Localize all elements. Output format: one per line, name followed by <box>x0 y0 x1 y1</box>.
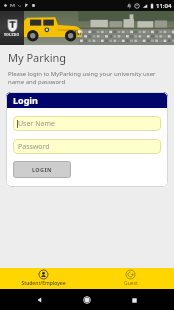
button[interactable]: Guest <box>87 268 174 289</box>
button[interactable]: User Name <box>13 116 161 131</box>
button[interactable]: Student/Employee <box>0 268 87 289</box>
button[interactable]: Recent apps <box>127 293 141 307</box>
button[interactable]: Password <box>13 139 161 154</box>
staticText: LOGIN <box>32 166 52 173</box>
staticText: TOLEDO <box>4 33 20 37</box>
staticText: Guest <box>124 280 138 287</box>
staticText: 11:04 <box>156 2 172 10</box>
staticText: Password <box>18 142 50 152</box>
staticText: Student/Employee <box>21 280 66 287</box>
staticText: Please login to MyParking using your uni… <box>8 70 164 86</box>
staticText: User Name <box>18 119 55 129</box>
button[interactable]: LOGIN <box>13 161 71 178</box>
button[interactable]: Home <box>80 293 94 307</box>
staticText: Login <box>13 94 38 106</box>
button[interactable]: Back <box>33 293 47 307</box>
staticText: My Parking <box>8 50 67 65</box>
